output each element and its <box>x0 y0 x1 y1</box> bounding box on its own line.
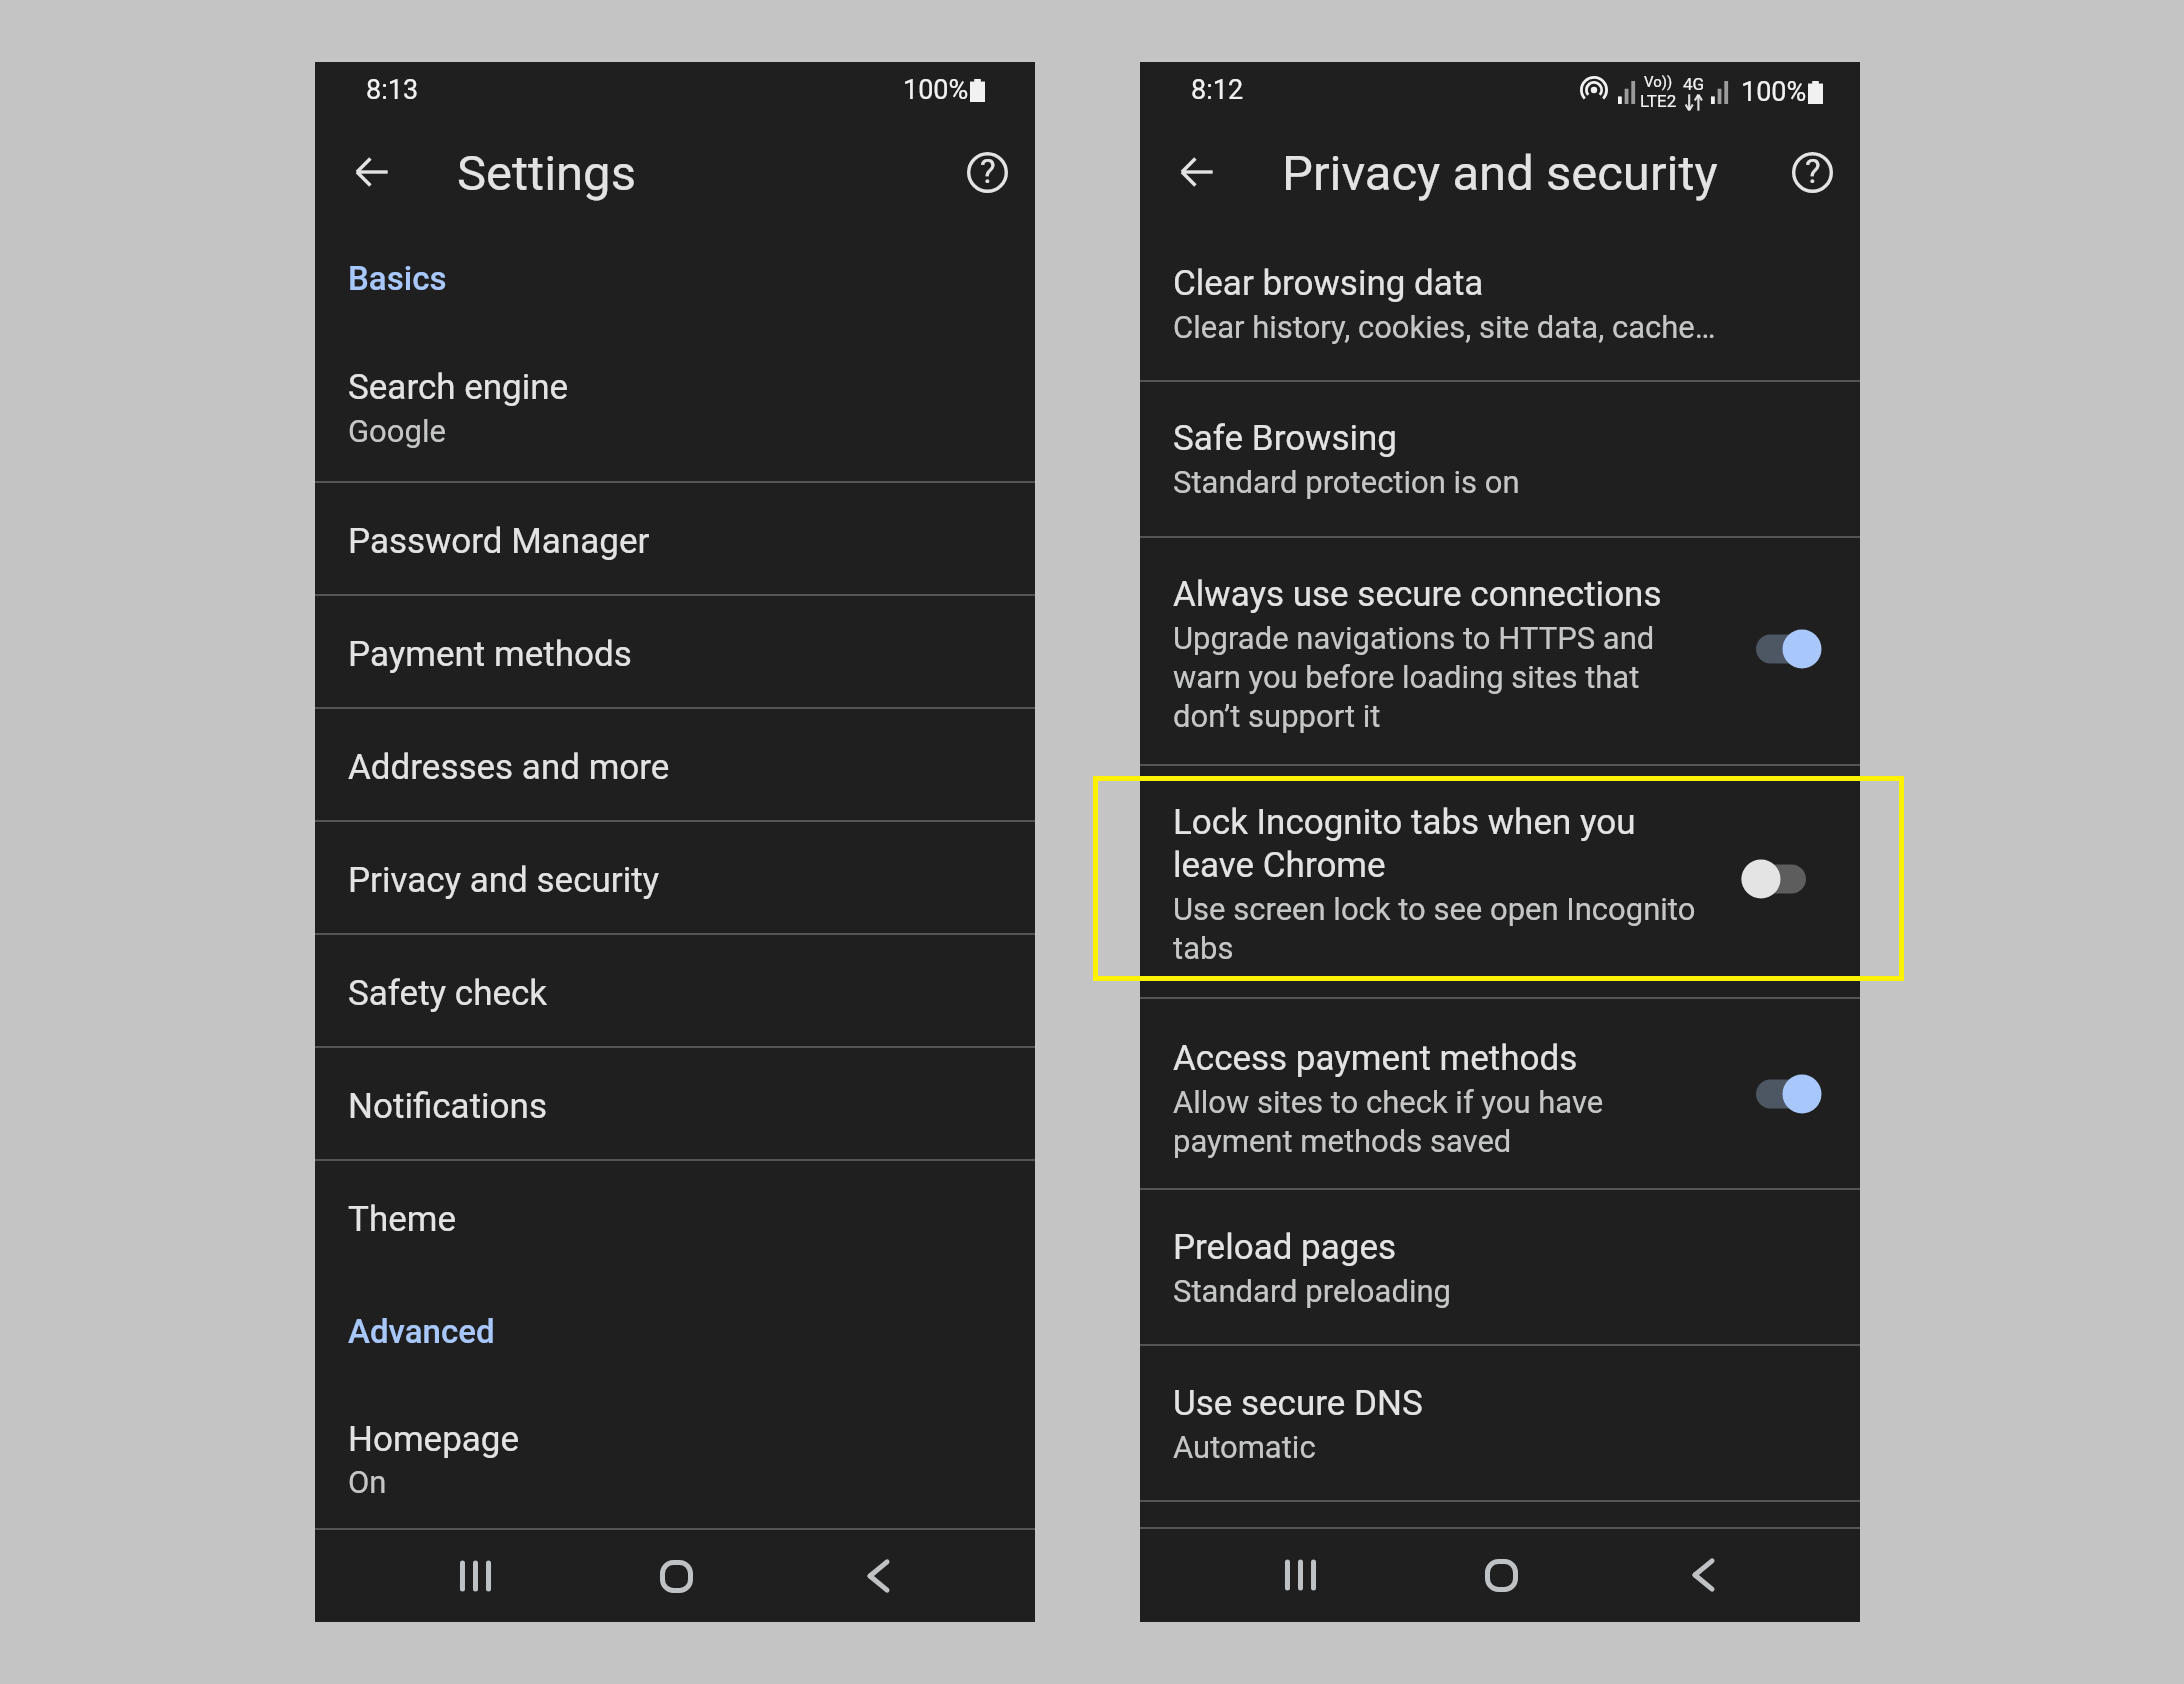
staticText: Addresses and more <box>348 747 670 788</box>
button[interactable] <box>315 935 1035 1046</box>
button[interactable]: Back <box>1658 1531 1748 1619</box>
staticText: 8:13 <box>366 74 419 106</box>
staticText: Use secure DNS <box>1173 1383 1423 1424</box>
staticText: Basics <box>348 259 447 298</box>
staticText: Advanced <box>348 1312 495 1351</box>
button[interactable]: Navigate up <box>341 141 403 203</box>
staticText: Always use secure connections <box>1173 574 1662 615</box>
button[interactable]: Help and feedback <box>956 141 1018 203</box>
button[interactable] <box>315 1387 1035 1528</box>
staticText: Safety check <box>348 973 548 1014</box>
staticText: Google <box>348 413 446 449</box>
staticText: Clear history, cookies, site data, cache… <box>1173 309 1716 345</box>
staticText: ? <box>1805 152 1821 191</box>
button[interactable]: Home <box>631 1532 721 1620</box>
staticText: Automatic <box>1173 1429 1316 1465</box>
staticText: 100% <box>903 74 969 106</box>
button[interactable]: Help and feedback <box>1781 141 1843 203</box>
button[interactable] <box>1140 999 1860 1188</box>
staticText: Notifications <box>348 1086 547 1127</box>
button[interactable] <box>315 709 1035 820</box>
button[interactable] <box>315 1161 1035 1272</box>
staticText: Standard preloading <box>1173 1273 1451 1309</box>
button[interactable] <box>315 228 1035 322</box>
staticText: 4G <box>1683 74 1705 94</box>
staticText: Privacy and security <box>348 860 660 901</box>
button[interactable]: Setting enabled <box>1744 617 1839 681</box>
button[interactable] <box>1140 382 1860 536</box>
staticText: Clear browsing data <box>1173 263 1484 304</box>
button[interactable] <box>315 322 1035 481</box>
staticText: ? <box>980 152 996 191</box>
button[interactable]: Home <box>1456 1531 1546 1619</box>
staticText: Settings <box>457 145 636 202</box>
button[interactable] <box>315 1048 1035 1159</box>
staticText: Preload pages <box>1173 1227 1397 1268</box>
staticText: On <box>348 1464 387 1500</box>
button[interactable] <box>315 822 1035 933</box>
button[interactable] <box>315 483 1035 594</box>
staticText: Search engine <box>348 367 569 408</box>
button[interactable]: Setting disabled <box>1729 847 1824 911</box>
staticText: Payment methods <box>348 634 632 675</box>
staticText: Access payment methods <box>1173 1038 1578 1079</box>
button[interactable]: Recent apps <box>1255 1531 1345 1619</box>
button[interactable] <box>1140 766 1860 997</box>
staticText: Safe Browsing <box>1173 418 1397 459</box>
button[interactable] <box>1140 1346 1860 1500</box>
staticText: Privacy and security <box>1282 145 1718 202</box>
staticText: Use screen lock to see open Incognito ta… <box>1173 891 1705 966</box>
staticText: Standard protection is on <box>1173 464 1520 500</box>
button[interactable]: Recent apps <box>430 1532 520 1620</box>
staticText: Password Manager <box>348 521 650 562</box>
staticText: 8:12 <box>1191 74 1244 106</box>
staticText: Lock Incognito tabs when you leave Chrom… <box>1173 802 1705 886</box>
button[interactable] <box>1140 1190 1860 1344</box>
button[interactable] <box>1140 228 1860 380</box>
button[interactable] <box>315 596 1035 707</box>
staticText: Theme <box>348 1199 456 1240</box>
button[interactable]: Back <box>833 1532 923 1620</box>
button[interactable]: Setting enabled <box>1744 1062 1839 1126</box>
staticText: Vo)) <box>1644 73 1673 91</box>
staticText: 100% <box>1741 76 1807 108</box>
staticText: Homepage <box>348 1419 520 1460</box>
staticText: Allow sites to check if you have payment… <box>1173 1084 1653 1159</box>
button[interactable] <box>315 1273 1035 1387</box>
staticText: Upgrade navigations to HTTPS and warn yo… <box>1173 620 1685 734</box>
button[interactable]: Navigate up <box>1166 141 1228 203</box>
staticText: LTE2 <box>1640 91 1677 111</box>
button[interactable] <box>1140 538 1860 764</box>
